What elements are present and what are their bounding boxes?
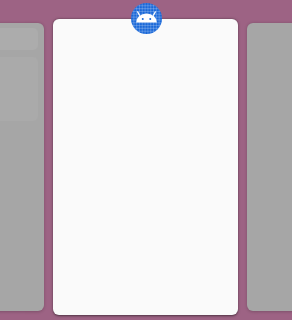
button[interactable]: [53, 19, 238, 315]
button[interactable]: Android app icon: [131, 3, 162, 34]
button[interactable]: [0, 23, 44, 311]
